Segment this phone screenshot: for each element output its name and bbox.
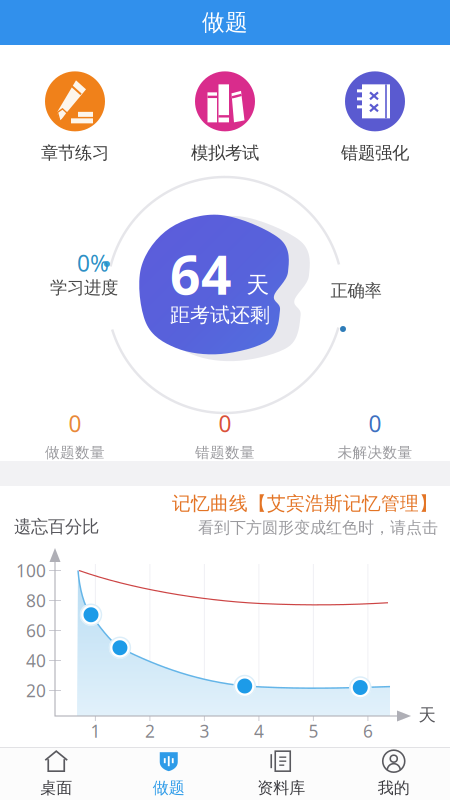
staticText: 资料库 — [257, 778, 305, 798]
staticText: 天 — [418, 704, 435, 726]
button[interactable]: 做题 — [112, 747, 225, 799]
button[interactable]: 桌面 — [0, 747, 112, 799]
staticText: 0 — [218, 408, 231, 438]
button[interactable]: 资料库 — [225, 747, 337, 799]
staticText: 0 — [68, 408, 81, 438]
staticText: 桌面 — [40, 778, 72, 798]
staticText: 章节练习 — [41, 142, 109, 164]
staticText: 遗忘百分比 — [14, 516, 99, 537]
staticText: 我的 — [378, 778, 410, 798]
staticText: 40 — [26, 649, 46, 672]
staticText: 60 — [26, 619, 46, 642]
staticText: 正确率 — [330, 280, 381, 301]
staticText: 做题 — [153, 778, 185, 798]
staticText: 0% — [77, 248, 109, 278]
staticText: 错题数量 — [195, 443, 255, 461]
button[interactable]: 模拟考试 — [165, 70, 285, 165]
staticText: 天 — [246, 271, 269, 299]
staticText: 80 — [26, 589, 46, 612]
staticText: 4 — [254, 719, 264, 742]
staticText: 20 — [26, 679, 46, 702]
staticText: 距考试还剩 — [170, 303, 270, 327]
staticText: 看到下方圆形变成红色时，请点击 — [198, 518, 438, 538]
button[interactable]: 我的 — [337, 747, 450, 799]
staticText: 错题强化 — [341, 142, 409, 164]
staticText: 记忆曲线【艾宾浩斯记忆管理】 — [172, 492, 438, 515]
staticText: 5 — [308, 719, 318, 742]
staticText: 0 — [368, 408, 381, 438]
staticText: 2 — [145, 719, 155, 742]
staticText: 模拟考试 — [191, 142, 259, 164]
button[interactable]: 章节练习 — [15, 70, 135, 165]
staticText: 3 — [199, 719, 209, 742]
staticText: 100 — [16, 559, 46, 582]
staticText: 6 — [363, 719, 373, 742]
staticText: 1 — [90, 719, 100, 742]
staticText: 64 — [170, 239, 232, 309]
staticText: 做题数量 — [45, 443, 105, 461]
staticText: 未解决数量 — [337, 443, 412, 461]
staticText: 做题 — [202, 9, 248, 36]
staticText: 学习进度 — [50, 277, 118, 298]
button[interactable]: 错题强化 — [315, 70, 435, 165]
button[interactable]: 做题 — [0, 0, 450, 45]
